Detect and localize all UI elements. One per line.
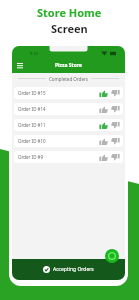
staticText: Order ID #10 [18, 138, 46, 144]
button[interactable]: Order ID #11 [14, 119, 123, 131]
button[interactable]: Thumbs up [98, 152, 108, 162]
staticText: Completed Orders [49, 76, 88, 82]
button[interactable]: Thumbs down [110, 136, 120, 146]
staticText: Pizza Store [27, 62, 110, 69]
staticText: Order ID #15 [18, 90, 46, 96]
button[interactable]: Thumbs up [98, 104, 108, 114]
button[interactable]: Order ID #10 [14, 135, 123, 147]
button[interactable]: Thumbs down [110, 152, 120, 162]
button[interactable]: Order ID #9 [14, 151, 123, 163]
button[interactable]: Order ID #15 [14, 87, 123, 99]
staticText: Screen [51, 21, 88, 36]
staticText: Store Home [37, 5, 102, 20]
button[interactable]: Thumbs down [110, 88, 120, 98]
button[interactable]: Thumbs down [110, 120, 120, 130]
button[interactable]: Thumbs up [98, 136, 108, 146]
staticText: 9:23 [30, 51, 38, 56]
staticText: Accepting Orders [53, 266, 94, 273]
staticText: Order ID #11 [18, 122, 46, 128]
staticText: Order ID #14 [18, 106, 46, 112]
button[interactable]: Order ID #14 [14, 103, 123, 115]
staticText: Order ID #9 [18, 154, 44, 160]
button[interactable]: Accepting Orders [12, 259, 125, 280]
button[interactable]: Thumbs down [110, 104, 120, 114]
button[interactable]: Thumbs up [98, 88, 108, 98]
button[interactable]: Open menu [12, 58, 27, 73]
button[interactable]: Thumbs up [98, 120, 108, 130]
button[interactable]: Chat support [105, 249, 119, 263]
